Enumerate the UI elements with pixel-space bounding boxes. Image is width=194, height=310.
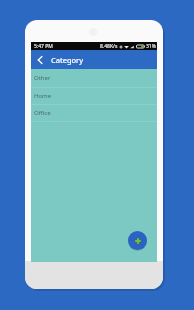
staticText: Home [34, 92, 52, 100]
staticText: 8.48K/s [100, 43, 118, 50]
staticText: 31% [146, 43, 156, 50]
staticText: Category [51, 55, 83, 65]
staticText: 5:47 PM [34, 43, 53, 50]
button[interactable]: Home [31, 87, 157, 104]
staticText: Office [34, 109, 51, 117]
button[interactable]: Back [31, 50, 48, 69]
button[interactable]: Other [31, 69, 157, 86]
button[interactable]: Office [31, 104, 157, 121]
button[interactable]: Add [128, 231, 147, 250]
staticText: Other [34, 74, 51, 82]
